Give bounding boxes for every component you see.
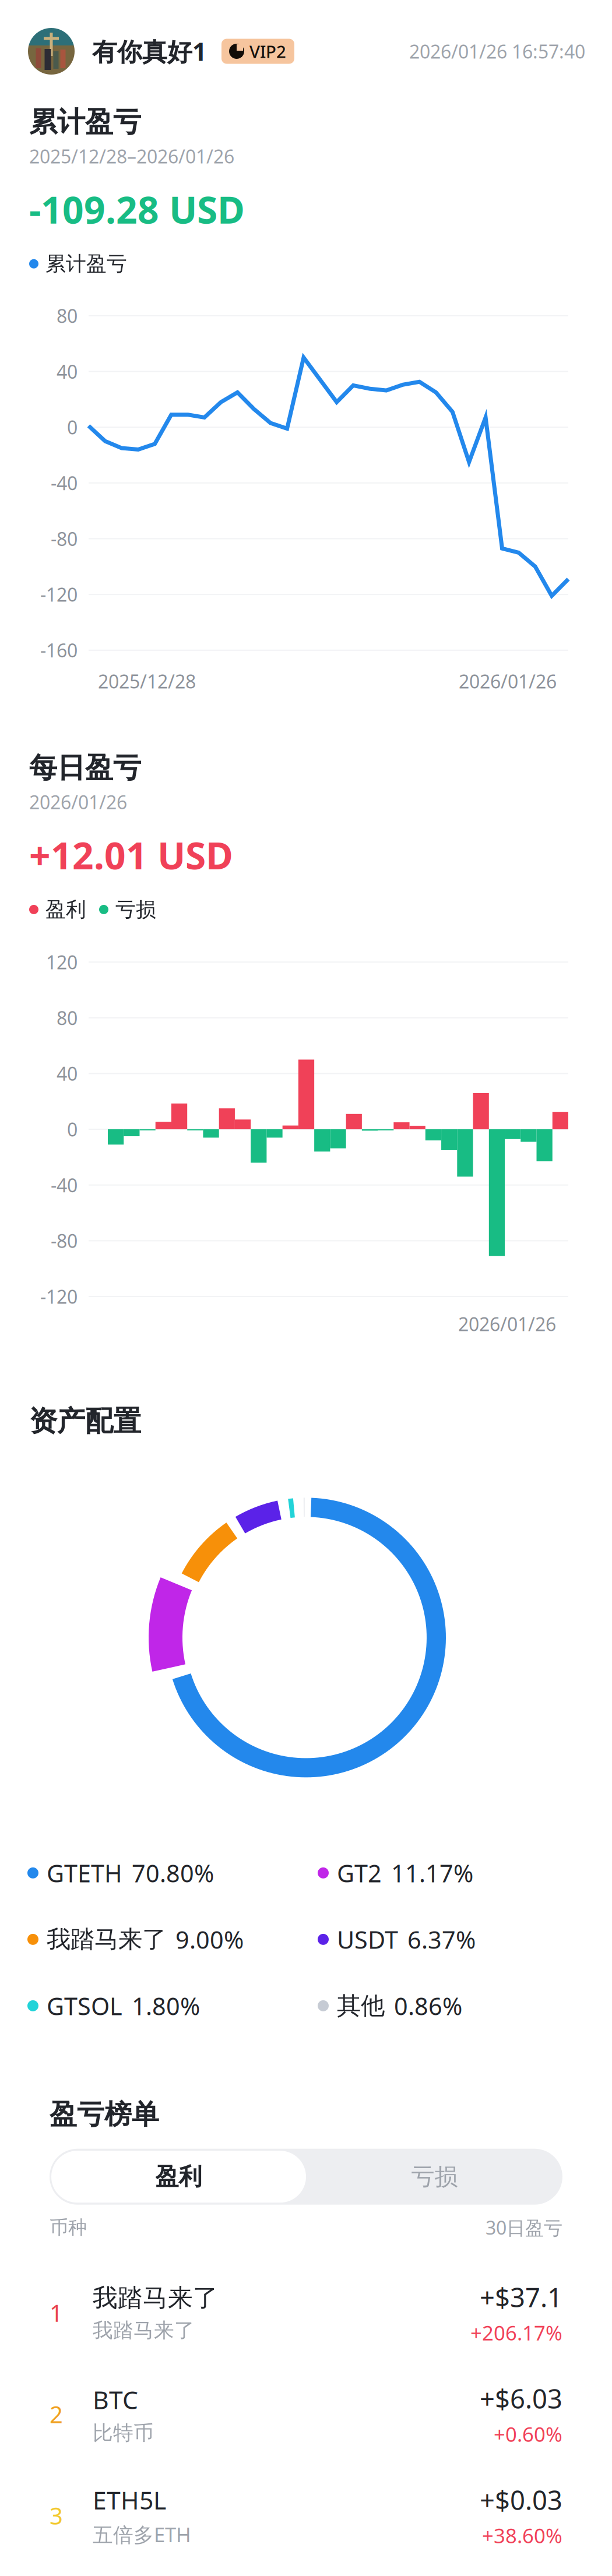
staticText: -160 <box>40 638 78 663</box>
staticText: -120 <box>40 582 78 607</box>
staticText: 我踏马来了 <box>93 2318 195 2343</box>
staticText: 亏损 <box>411 2162 458 2191</box>
staticText: +12.01 USD <box>29 830 233 880</box>
staticText: GTETH <box>47 1857 122 1889</box>
staticText: 每日盈亏 <box>29 751 141 785</box>
staticText: BTC <box>93 2383 138 2416</box>
staticText: 盈亏榜单 <box>50 2098 159 2131</box>
staticText: 我踏马来了 <box>47 1925 166 1954</box>
staticText: 2026/01/26 <box>459 669 557 693</box>
staticText: USDT <box>337 1923 398 1955</box>
staticText: -109.28 USD <box>29 184 245 234</box>
staticText: 币种 <box>50 2216 87 2239</box>
staticText: 0.86% <box>394 1990 462 2022</box>
staticText: 累计盈亏 <box>45 251 127 276</box>
staticText: 2026/01/26 <box>29 790 127 814</box>
staticText: 比特币 <box>93 2421 154 2445</box>
staticText: 2026/01/26 <box>458 1312 556 1336</box>
staticText: 2025/12/28 <box>98 669 196 693</box>
staticText: 120 <box>46 950 78 974</box>
button[interactable]: 有你真好1 <box>28 28 294 75</box>
staticText: 亏损 <box>115 897 156 922</box>
staticText: 0 <box>67 415 78 440</box>
staticText: 2026/01/26 16:57:40 <box>409 39 585 64</box>
staticText: 40 <box>57 359 78 384</box>
button[interactable]: 亏损 <box>307 2151 562 2203</box>
staticText: +$37.1 <box>480 2279 562 2315</box>
staticText: 40 <box>57 1061 78 1086</box>
staticText: 1 <box>50 2297 63 2328</box>
staticText: VIP2 <box>249 40 286 63</box>
staticText: 五倍多ETH <box>93 2521 191 2548</box>
staticText: 0 <box>67 1117 78 1142</box>
staticText: 我踏马来了 <box>93 2283 218 2313</box>
staticText: +38.60% <box>482 2522 562 2549</box>
staticText: 80 <box>57 1005 78 1030</box>
staticText: 30日盈亏 <box>486 2215 562 2240</box>
button[interactable]: 1 <box>0 2262 612 2363</box>
staticText: -40 <box>51 471 78 495</box>
staticText: 有你真好1 <box>92 35 206 68</box>
staticText: 1.80% <box>132 1990 200 2022</box>
staticText: GT2 <box>337 1857 382 1889</box>
button[interactable]: 3 <box>0 2465 612 2566</box>
staticText: 80 <box>57 303 78 328</box>
staticText: 2025/12/28–2026/01/26 <box>29 144 234 169</box>
staticText: 2 <box>50 2399 63 2430</box>
staticText: +$0.03 <box>480 2482 562 2517</box>
staticText: 其他 <box>337 1991 385 2021</box>
staticText: 70.80% <box>132 1857 214 1889</box>
staticText: -120 <box>40 1284 78 1309</box>
button[interactable]: 2 <box>0 2363 612 2465</box>
staticText: -40 <box>51 1173 78 1197</box>
button[interactable]: 盈利 <box>51 2151 306 2203</box>
staticText: 盈利 <box>155 2162 202 2191</box>
staticText: 累计盈亏 <box>29 105 141 139</box>
staticText: -80 <box>51 1228 78 1253</box>
staticText: 3 <box>50 2500 63 2531</box>
staticText: +0.60% <box>494 2421 562 2447</box>
staticText: ETH5L <box>93 2483 166 2516</box>
staticText: GTSOL <box>47 1990 122 2022</box>
staticText: +$6.03 <box>480 2381 562 2416</box>
staticText: 6.37% <box>407 1923 476 1955</box>
staticText: -80 <box>51 526 78 551</box>
staticText: 9.00% <box>175 1923 244 1955</box>
staticText: +206.17% <box>470 2319 562 2346</box>
staticText: 11.17% <box>391 1857 473 1889</box>
staticText: 盈利 <box>45 897 86 922</box>
staticText: 资产配置 <box>29 1404 141 1438</box>
